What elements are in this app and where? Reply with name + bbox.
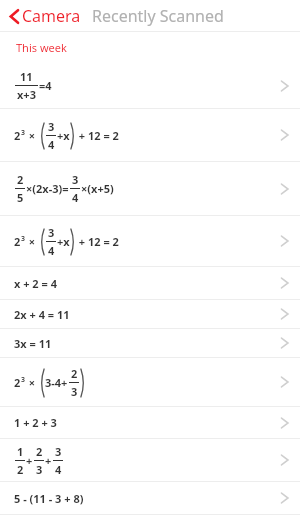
staticText: 4 <box>48 243 55 258</box>
staticText: 4 <box>48 137 55 152</box>
staticText: 2 <box>17 172 24 187</box>
staticText: 2 <box>71 366 78 381</box>
staticText: + 12 = 2 <box>76 234 119 249</box>
staticText: 1 + 2 + 3 <box>14 415 57 430</box>
staticText: 3 <box>21 375 26 385</box>
staticText: ×(2x-3)= <box>26 181 69 196</box>
staticText: 2 <box>14 234 21 249</box>
staticText: 3 <box>55 444 62 459</box>
button[interactable]: 2 <box>0 162 300 216</box>
staticText: 3 <box>48 225 55 240</box>
staticText: 4 <box>72 190 79 205</box>
staticText: 3 <box>48 119 55 134</box>
staticText: 2 <box>14 375 21 390</box>
button[interactable]: 11 <box>0 63 300 109</box>
button[interactable]: x + 2 = 4 <box>0 267 300 300</box>
staticText: + <box>45 453 52 468</box>
staticText: 1 <box>17 444 24 459</box>
staticText: 3 <box>36 462 43 477</box>
staticText: + 12 = 2 <box>76 128 119 143</box>
button[interactable]: Camera <box>6 3 84 29</box>
staticText: 3x = 11 <box>14 336 52 351</box>
staticText: 5 - (11 - 3 + 8) <box>14 491 84 506</box>
staticText: × <box>26 128 39 143</box>
staticText: Camera <box>22 5 81 27</box>
staticText: 2 <box>17 462 24 477</box>
staticText: 4 <box>55 462 62 477</box>
staticText: 2 <box>36 444 43 459</box>
staticText: 2 <box>14 128 21 143</box>
staticText: 11 <box>20 69 33 84</box>
staticText: Recently Scanned <box>92 5 224 27</box>
staticText: This week <box>16 40 67 55</box>
button[interactable]: 3x = 11 <box>0 329 300 358</box>
staticText: × <box>26 375 39 390</box>
staticText: 5 <box>17 190 24 205</box>
staticText: 3-4+ <box>45 375 68 390</box>
staticText: + <box>26 453 33 468</box>
button[interactable]: 2 <box>0 109 300 162</box>
staticText: × <box>26 234 39 249</box>
button[interactable]: 5 - (11 - 3 + 8) <box>0 482 300 515</box>
staticText: 3 <box>21 128 26 138</box>
button[interactable]: 2x + 4 = 11 <box>0 300 300 329</box>
button[interactable]: 2 <box>0 216 300 267</box>
staticText: +x <box>57 234 70 249</box>
staticText: =4 <box>39 78 52 93</box>
staticText: 3 <box>21 234 26 244</box>
staticText: x+3 <box>17 87 36 102</box>
staticText: x + 2 = 4 <box>14 276 57 291</box>
button[interactable]: 1 <box>0 439 300 482</box>
staticText: +x <box>57 128 70 143</box>
button[interactable]: 1 + 2 + 3 <box>0 407 300 439</box>
staticText: 3 <box>72 172 79 187</box>
staticText: 2x + 4 = 11 <box>14 307 70 322</box>
staticText: ×(x+5) <box>81 181 114 196</box>
button[interactable]: 2 <box>0 358 300 407</box>
staticText: 3 <box>71 384 78 399</box>
